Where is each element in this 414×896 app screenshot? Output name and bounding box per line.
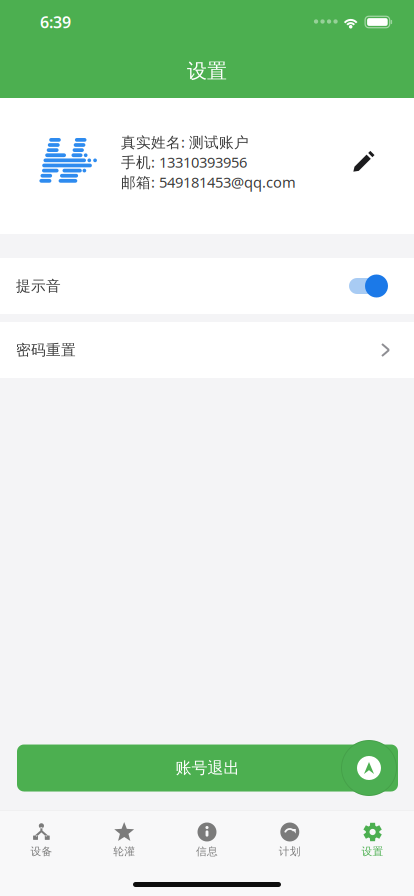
staticText: 设备 (30, 845, 52, 858)
staticText: 账号退出 (175, 758, 239, 778)
button[interactable]: 设置 (331, 810, 414, 865)
button[interactable]: 计划 (248, 810, 331, 865)
button[interactable]: 账号退出 (17, 744, 398, 791)
staticText: 设置 (187, 59, 227, 83)
staticText: 计划 (279, 845, 301, 858)
button[interactable]: 轮灌 (83, 810, 166, 865)
staticText: 密码重置 (16, 341, 76, 359)
staticText: 手机: 13310393956 (121, 152, 247, 172)
button[interactable]: 信息 (166, 810, 248, 865)
staticText: 邮箱: 549181453@qq.com (121, 172, 296, 192)
staticText: 真实姓名: 测试账户 (121, 132, 249, 152)
staticText: 6:39 (40, 11, 71, 33)
button[interactable]: 定位 (341, 740, 397, 796)
button[interactable]: 设备 (0, 810, 83, 865)
staticText: 提示音 (16, 277, 61, 295)
staticText: 轮灌 (113, 845, 135, 858)
button[interactable]: 提示音开关 (348, 274, 388, 298)
button[interactable]: 编辑资料 (352, 98, 414, 173)
button[interactable]: 密码重置 (0, 322, 414, 378)
staticText: 设置 (362, 845, 384, 858)
staticText: 信息 (196, 845, 218, 858)
